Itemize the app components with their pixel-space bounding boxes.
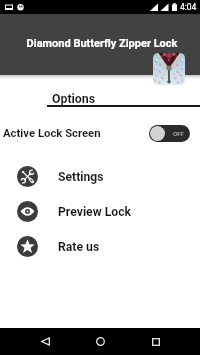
button[interactable]: Preview Lock	[0, 194, 200, 229]
staticText: Options	[52, 92, 95, 106]
button[interactable]: Back	[31, 328, 59, 355]
button[interactable]: Active Lock Screen switch, off	[149, 125, 190, 142]
staticText: 4:04	[180, 2, 197, 12]
staticText: Preview Lock	[58, 205, 132, 219]
button[interactable]: Rate us	[0, 229, 200, 264]
button[interactable]: Settings	[0, 159, 200, 194]
staticText: Active Lock Screen	[3, 127, 101, 140]
staticText: Diamond Butterfly Zipper Lock	[2, 37, 200, 50]
button[interactable]: Home	[86, 328, 114, 355]
staticText: Rate us	[58, 240, 100, 254]
button[interactable]: Active Lock Screen	[0, 121, 200, 145]
staticText: Settings	[58, 170, 104, 184]
staticText: OFF	[173, 130, 184, 137]
button[interactable]: Recent apps	[142, 328, 170, 355]
